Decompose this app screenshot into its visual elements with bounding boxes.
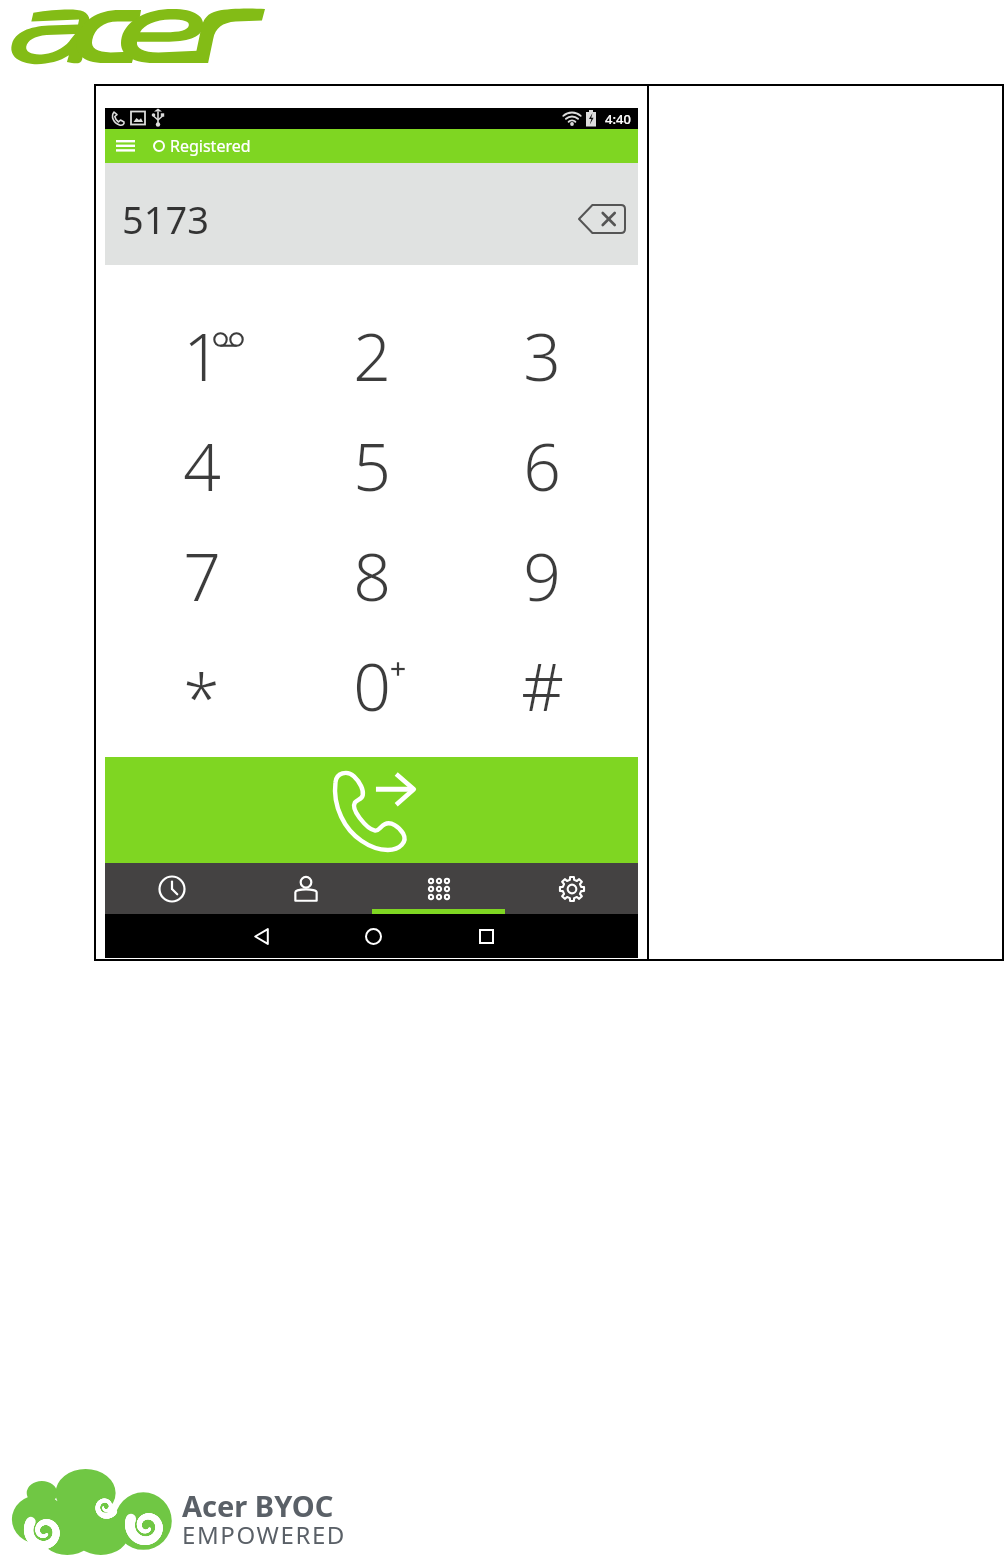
button[interactable]: Menu: [105, 129, 638, 163]
staticText: 8: [353, 530, 391, 620]
button[interactable]: Recents: [430, 914, 543, 958]
button[interactable]: Recents: [105, 863, 239, 914]
staticText: 5: [353, 420, 391, 510]
staticText: 6: [523, 420, 561, 510]
staticText: 7: [183, 530, 221, 620]
staticText: 4: [183, 420, 221, 510]
staticText: 1: [183, 310, 221, 400]
button[interactable]: Settings: [505, 863, 638, 914]
button[interactable]: 2: [287, 300, 457, 410]
button[interactable]: 6: [457, 410, 627, 520]
staticText: 3: [523, 310, 561, 400]
staticText: *: [183, 651, 220, 741]
button[interactable]: 9: [457, 520, 627, 630]
staticText: 9: [523, 530, 561, 620]
button[interactable]: Dialpad: [372, 863, 505, 914]
button[interactable]: 4: [116, 410, 287, 520]
button[interactable]: #: [457, 630, 627, 740]
staticText: Acer BYOC: [182, 1486, 334, 1525]
button[interactable]: Contacts: [239, 863, 372, 914]
button[interactable]: Backspace: [573, 196, 631, 242]
staticText: EMPOWERED: [182, 1518, 346, 1551]
button[interactable]: Call: [105, 757, 638, 863]
button[interactable]: Home: [317, 914, 430, 958]
button[interactable]: Back: [205, 914, 317, 958]
staticText: 5173: [122, 193, 209, 245]
staticText: 2: [353, 310, 391, 400]
button[interactable]: 0: [287, 630, 457, 740]
button[interactable]: 3: [457, 300, 627, 410]
button[interactable]: 8: [287, 520, 457, 630]
staticText: #: [521, 640, 564, 730]
staticText: 4:40: [605, 110, 631, 128]
button[interactable]: Menu: [105, 129, 145, 163]
staticText: 0: [353, 640, 391, 730]
button[interactable]: *: [116, 630, 287, 740]
button[interactable]: 7: [116, 520, 287, 630]
button[interactable]: 1: [116, 300, 287, 410]
button[interactable]: 5: [287, 410, 457, 520]
staticText: Registered: [170, 135, 251, 157]
